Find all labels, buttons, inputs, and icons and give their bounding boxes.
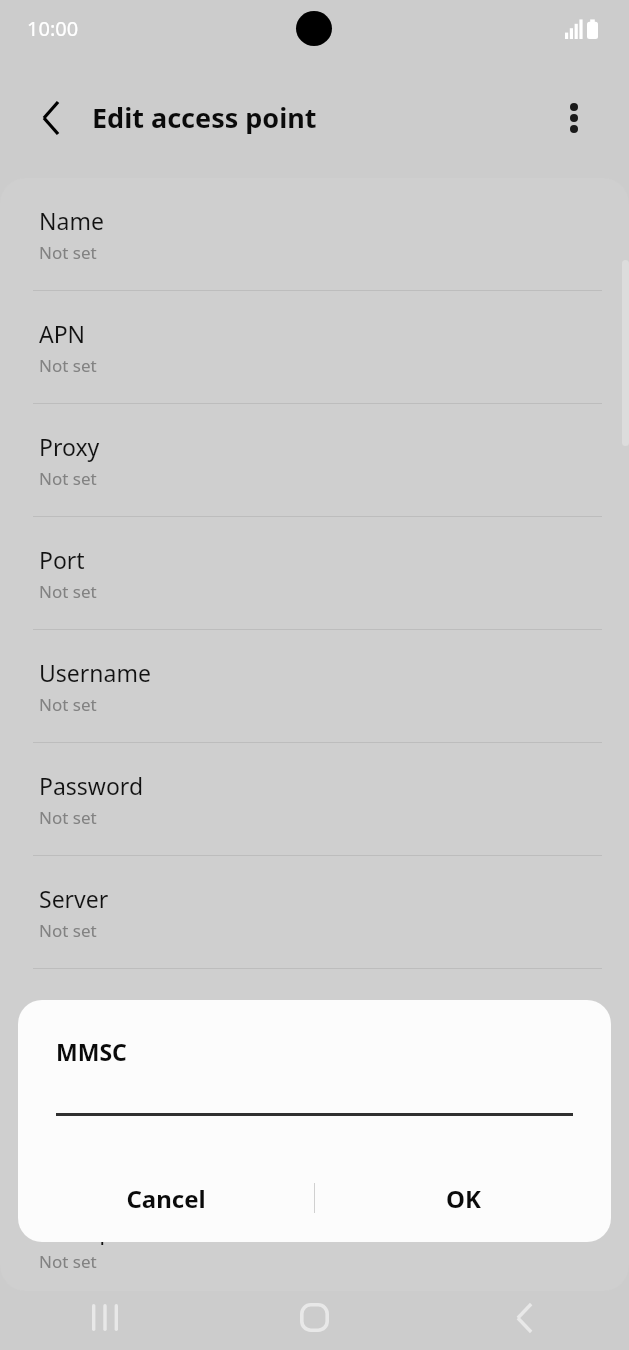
staticText: Not set [39,806,97,829]
button[interactable]: Recent apps [0,1285,209,1350]
staticText: Not set [39,919,97,942]
staticText: Not set [39,693,97,716]
staticText: Password [39,770,144,801]
button[interactable]: Password [0,743,629,856]
button[interactable]: MMS proxy [0,1082,629,1195]
button[interactable]: OK [315,1154,611,1242]
button[interactable]: MMS port [0,1195,629,1291]
button[interactable]: APN [0,291,629,404]
staticText: Not set [39,241,97,264]
staticText: OK [446,1182,481,1215]
staticText: Cancel [126,1182,206,1215]
staticText: Not set [39,580,97,603]
button[interactable]: More options [547,91,601,145]
staticText: Proxy [39,431,100,462]
staticText: Not set [39,1250,97,1273]
button[interactable]: MMSC [0,969,629,1082]
staticText: Server [39,883,109,914]
staticText: MMSC [56,1036,127,1067]
staticText: 10:00 [27,15,79,42]
button[interactable]: Name [0,178,629,291]
button[interactable]: Back [23,90,79,146]
button[interactable]: Proxy [0,404,629,517]
staticText: APN [39,318,86,349]
staticText: Edit access point [92,99,317,136]
staticText: Not set [39,1032,97,1055]
button[interactable]: Port [0,517,629,630]
button[interactable]: Username [0,630,629,743]
button[interactable]: Cancel [18,1154,314,1242]
staticText: MMS port [39,1214,146,1245]
staticText: Not set [39,354,97,377]
staticText: Name [39,205,104,236]
staticText: MMS proxy [39,1109,160,1140]
button[interactable]: Server [0,856,629,969]
staticText: Port [39,544,85,575]
button[interactable]: Home [209,1285,419,1350]
staticText: Username [39,657,151,688]
staticText: Not set [39,467,97,490]
staticText: MMSC [39,996,108,1027]
